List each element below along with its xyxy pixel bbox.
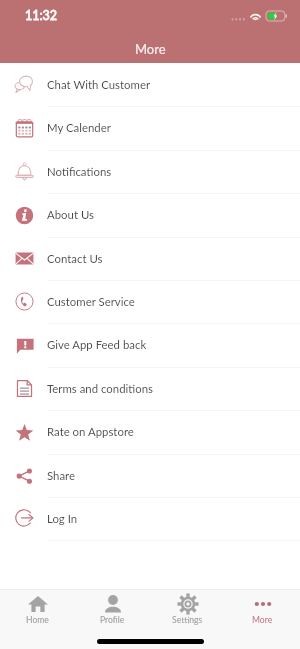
button[interactable]: More bbox=[225, 590, 300, 631]
button[interactable]: Give App Feed back bbox=[0, 323, 300, 367]
staticText: More bbox=[135, 41, 166, 57]
staticText: Home bbox=[26, 615, 49, 625]
button[interactable]: Notifications bbox=[0, 150, 300, 193]
button[interactable]: Contact Us bbox=[0, 237, 300, 280]
staticText: Settings bbox=[172, 615, 203, 625]
staticText: More bbox=[252, 615, 273, 625]
button[interactable]: Customer Service bbox=[0, 280, 300, 323]
button[interactable]: Settings bbox=[150, 590, 225, 631]
button[interactable]: Home bbox=[0, 590, 75, 631]
staticText: Chat With Customer bbox=[47, 78, 151, 92]
staticText: About Us bbox=[47, 208, 94, 222]
staticText: Customer Service bbox=[47, 295, 135, 309]
button[interactable]: Share bbox=[0, 454, 300, 497]
button[interactable]: About Us bbox=[0, 193, 300, 237]
staticText: Log In bbox=[47, 512, 78, 526]
staticText: 11:32 bbox=[25, 8, 58, 23]
staticText: Notifications bbox=[47, 165, 112, 179]
staticText: Contact Us bbox=[47, 252, 103, 266]
button[interactable]: Log In bbox=[0, 497, 300, 540]
staticText: Terms and conditions bbox=[47, 382, 154, 396]
button[interactable]: Terms and conditions bbox=[0, 367, 300, 410]
button[interactable]: Rate on Appstore bbox=[0, 410, 300, 454]
staticText: My Calender bbox=[47, 121, 111, 135]
button[interactable]: Profile bbox=[75, 590, 150, 631]
staticText: Share bbox=[47, 469, 76, 483]
button[interactable]: Chat With Customer bbox=[0, 63, 300, 106]
button[interactable]: My Calender bbox=[0, 106, 300, 150]
staticText: Rate on Appstore bbox=[47, 425, 134, 439]
staticText: Profile bbox=[100, 615, 125, 625]
staticText: Give App Feed back bbox=[47, 338, 147, 352]
